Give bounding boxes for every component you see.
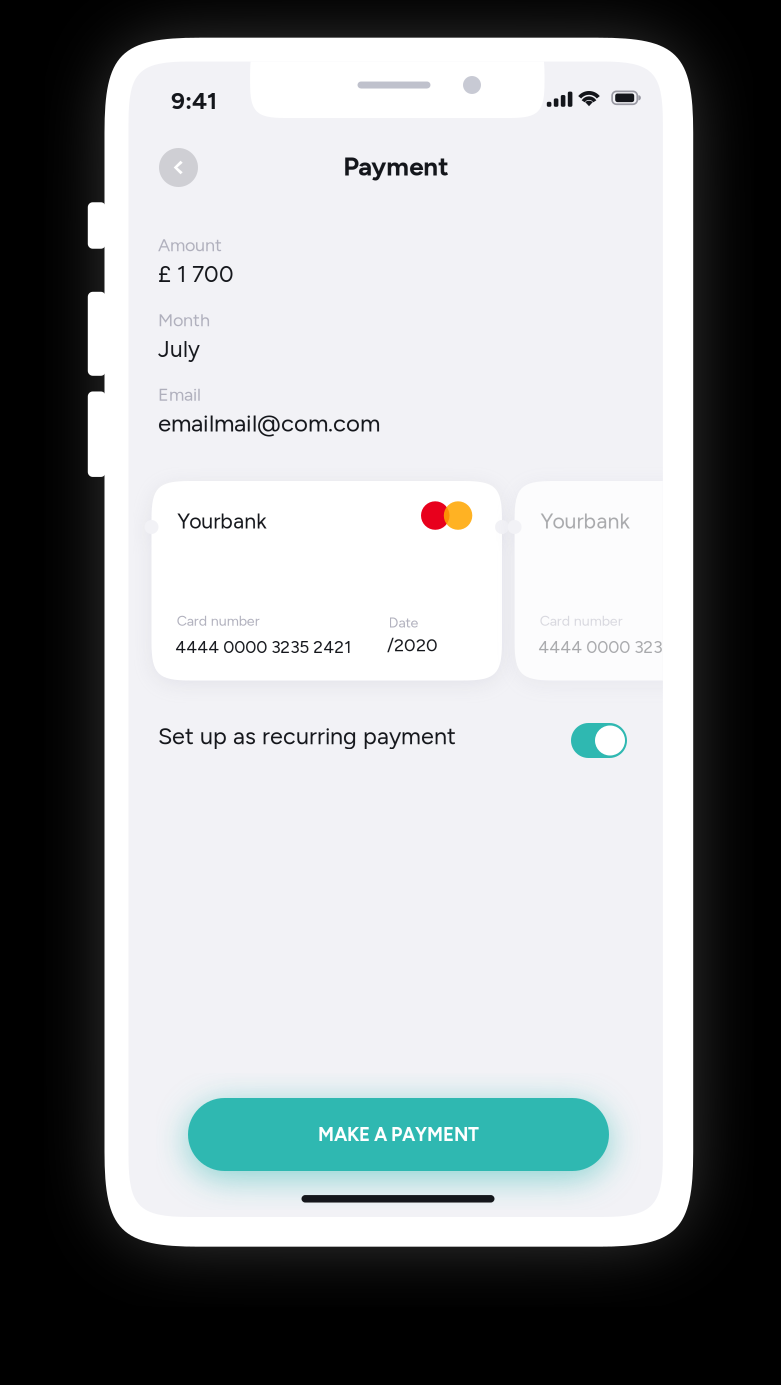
staticText: Yourbank (540, 508, 629, 534)
staticText: MAKE A PAYMENT (318, 1123, 479, 1146)
staticText: Amount (158, 234, 222, 256)
staticText: emailmail@com.com (158, 409, 380, 437)
button[interactable]: MAKE A PAYMENT (188, 1098, 609, 1171)
staticText: 4444 0000 3235 2421 (538, 637, 714, 657)
staticText: Payment (343, 151, 448, 182)
staticText: Month (158, 309, 210, 331)
button[interactable]: Back (159, 148, 198, 187)
staticText: Date (388, 614, 418, 631)
staticText: 9:41 (171, 86, 217, 115)
staticText: Set up as recurring payment (158, 722, 456, 750)
staticText: /2020 (387, 634, 438, 656)
staticText: Yourbank (177, 508, 266, 534)
staticText: July (158, 335, 200, 363)
staticText: £ 1 700 (158, 260, 234, 288)
staticText: 4444 0000 3235 2421 (175, 637, 351, 657)
button[interactable]: Set up as recurring payment (571, 723, 627, 758)
staticText: Card number (540, 612, 623, 629)
staticText: Card number (177, 612, 260, 629)
staticText: Email (158, 384, 201, 405)
